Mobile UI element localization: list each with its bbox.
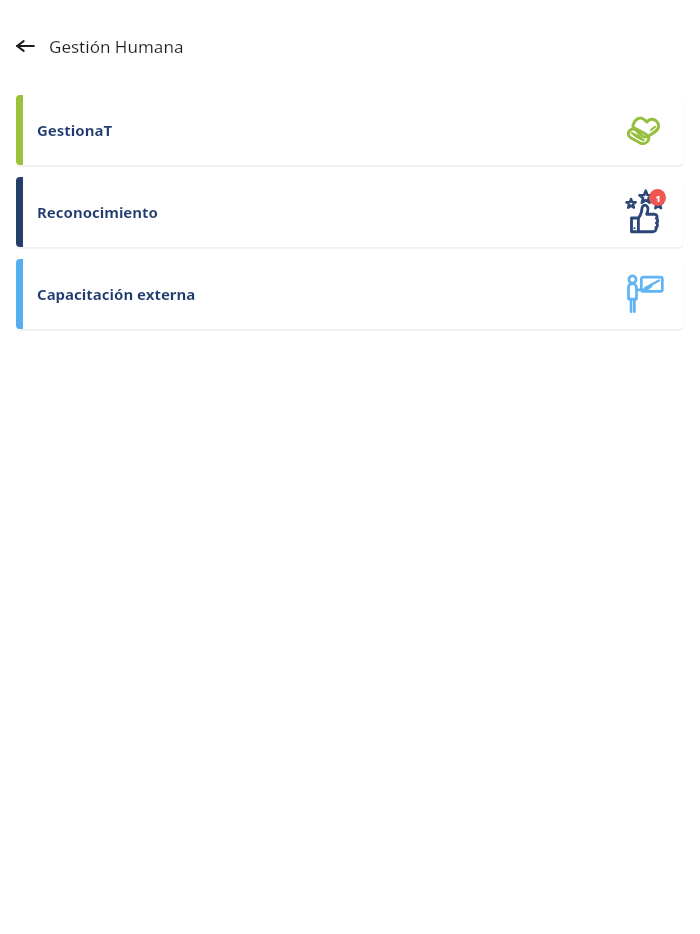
- staticText: Gestión Humana: [49, 35, 184, 58]
- staticText: GestionaT: [37, 120, 113, 140]
- staticText: Capacitación externa: [37, 284, 196, 304]
- button[interactable]: Reconocimiento, 1 notificación: [16, 177, 683, 247]
- button[interactable]: Capacitación externa: [16, 259, 683, 329]
- staticText: Reconocimiento: [37, 202, 158, 222]
- staticText: 1: [655, 192, 661, 204]
- button[interactable]: GestionaT: [16, 95, 683, 165]
- button[interactable]: Back: [6, 27, 44, 65]
